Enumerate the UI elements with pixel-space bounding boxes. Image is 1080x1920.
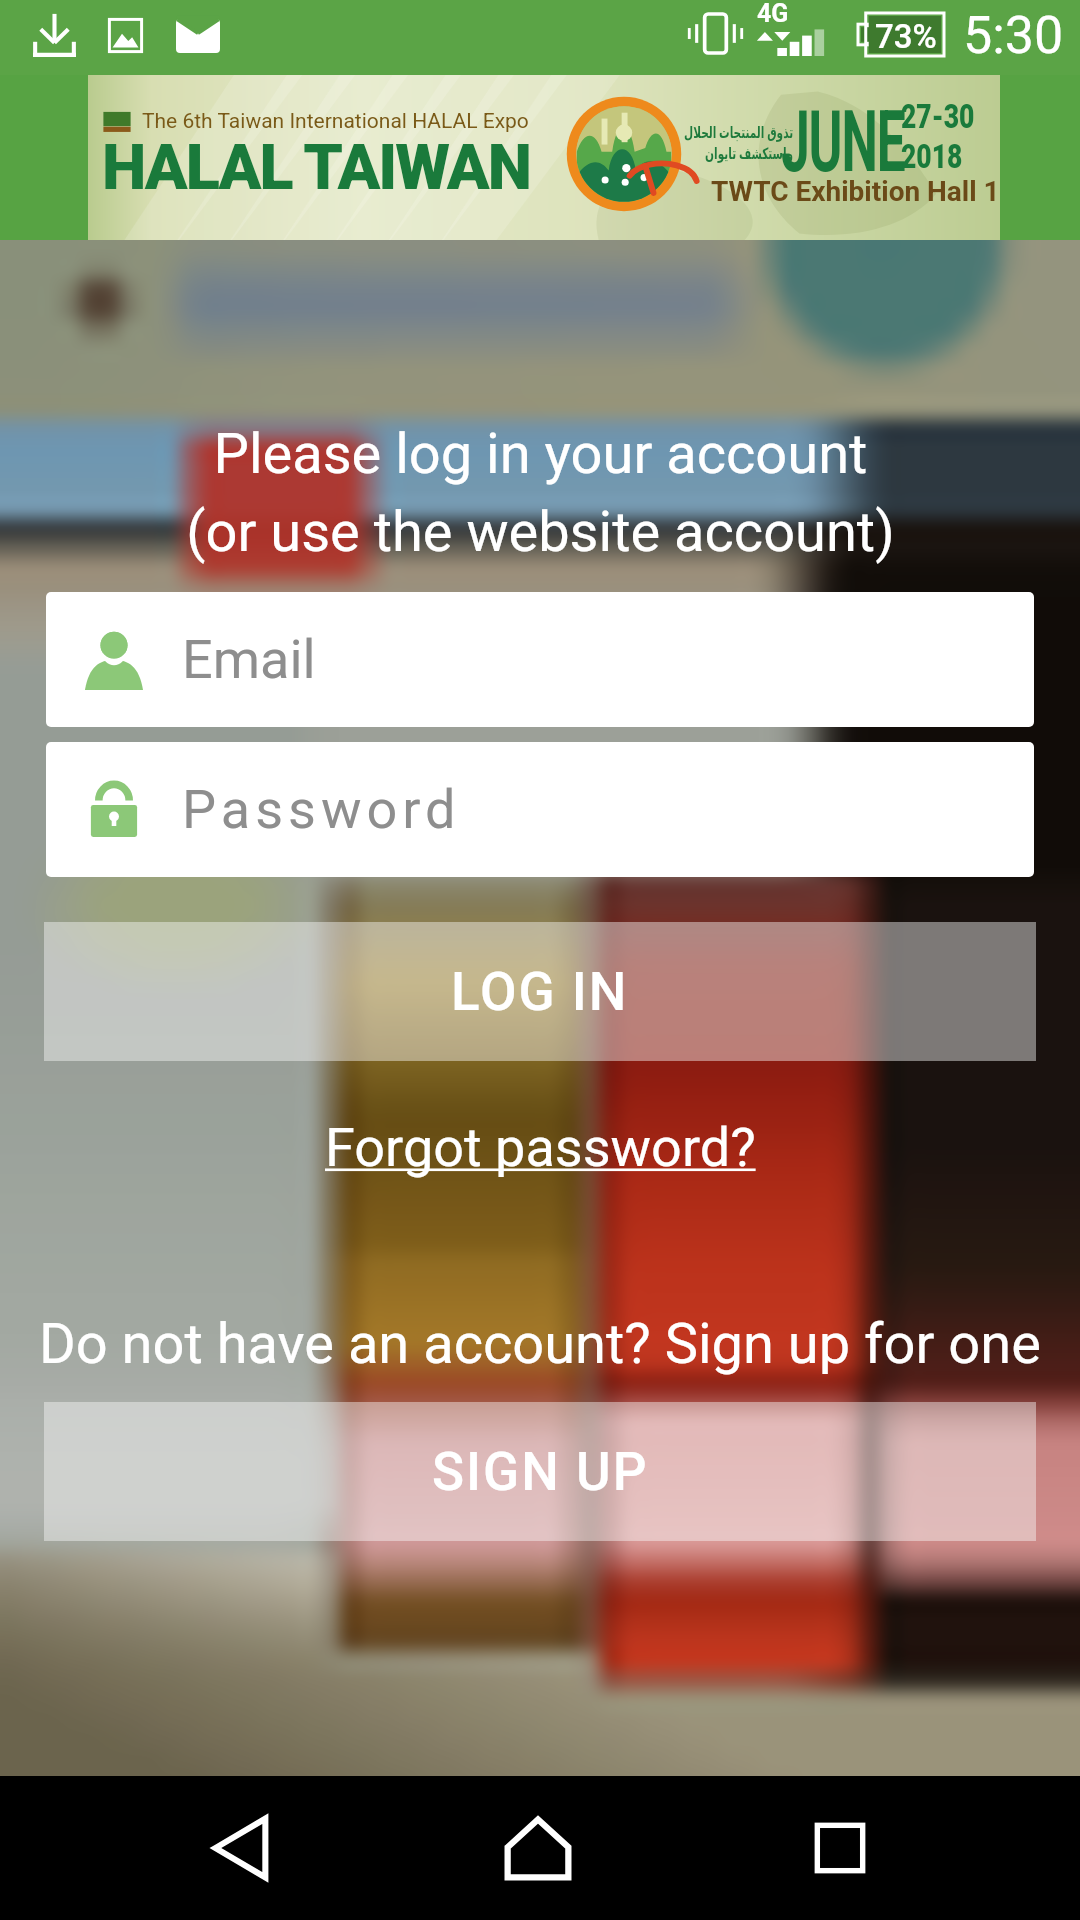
- staticText: 5:30: [963, 5, 1064, 66]
- staticText: واستكشف تايوان: [705, 142, 794, 163]
- staticText: Please log in your account (or use the w…: [186, 421, 895, 564]
- button[interactable]: Recent apps: [780, 1776, 900, 1920]
- staticText: TWTC Exhibition Hall 1: [711, 175, 1000, 208]
- staticText: SIGN UP: [432, 1441, 649, 1503]
- button[interactable]: Halal Taiwan advertisement: [0, 75, 1080, 240]
- staticText: Password: [182, 778, 461, 841]
- staticText: The 6th Taiwan International HALAL Expo: [142, 109, 529, 134]
- staticText: HALAL TAIWAN: [102, 131, 530, 205]
- staticText: 73%: [875, 17, 937, 56]
- staticText: Do not have an account? Sign up for one: [39, 1311, 1041, 1377]
- button[interactable]: LOG IN: [44, 922, 1036, 1061]
- staticText: 2018: [901, 136, 963, 176]
- button[interactable]: Email: [46, 592, 1034, 727]
- button[interactable]: Back: [181, 1776, 301, 1920]
- staticText: 27-30: [901, 96, 975, 136]
- staticText: JUNE: [781, 91, 905, 192]
- staticText: Email: [182, 628, 316, 691]
- staticText: 4G: [757, 0, 789, 28]
- button[interactable]: Home: [478, 1776, 598, 1920]
- button[interactable]: Forgot password?: [325, 1116, 756, 1179]
- staticText: تذوق المنتجات الحلال: [684, 121, 794, 142]
- button[interactable]: Password: [46, 742, 1034, 877]
- staticText: LOG IN: [451, 961, 629, 1023]
- button[interactable]: SIGN UP: [44, 1402, 1036, 1541]
